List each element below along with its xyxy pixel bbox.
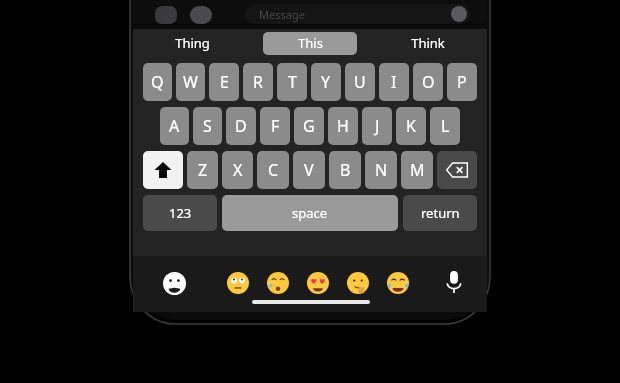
button[interactable]: Emoji	[265, 270, 291, 296]
staticText: X	[233, 159, 243, 181]
button[interactable]: Emoji keyboard	[161, 270, 187, 296]
staticText: Thing	[175, 34, 210, 52]
button[interactable]: Shift	[143, 151, 183, 189]
button[interactable]: Y	[311, 63, 341, 101]
staticText: L	[441, 115, 450, 137]
staticText: G	[303, 115, 315, 137]
staticText: C	[268, 159, 279, 181]
button[interactable]: Emoji	[305, 270, 331, 296]
staticText: Q	[151, 71, 164, 93]
button[interactable]: H	[328, 107, 358, 145]
staticText: K	[406, 115, 416, 137]
staticText: F	[271, 115, 280, 137]
button[interactable]: L	[430, 107, 460, 145]
button[interactable]: K	[396, 107, 426, 145]
button[interactable]: F	[260, 107, 290, 145]
button[interactable]: Z	[187, 151, 218, 189]
button[interactable]: Backspace	[437, 151, 477, 189]
button[interactable]: A	[160, 107, 189, 145]
staticText: return	[421, 204, 460, 222]
button[interactable]: space	[222, 195, 398, 231]
staticText: R	[253, 71, 263, 93]
staticText: V	[304, 159, 314, 181]
button[interactable]: V	[293, 151, 325, 189]
button[interactable]: R	[243, 63, 273, 101]
button[interactable]: This	[251, 29, 369, 57]
button[interactable]: G	[294, 107, 324, 145]
staticText: W	[183, 71, 198, 93]
button[interactable]: T	[277, 63, 307, 101]
staticText: U	[354, 71, 366, 93]
staticText: Message	[259, 7, 305, 22]
button[interactable]: N	[365, 151, 397, 189]
button[interactable]: C	[257, 151, 289, 189]
button[interactable]: Dictation	[441, 269, 467, 295]
button[interactable]: E	[209, 63, 239, 101]
staticText: D	[235, 115, 247, 137]
button[interactable]: Message	[245, 4, 471, 24]
staticText: H	[337, 115, 349, 137]
staticText: O	[422, 71, 435, 93]
staticText: space	[292, 204, 328, 222]
staticText: M	[410, 159, 425, 181]
staticText: S	[203, 115, 212, 137]
button[interactable]: S	[193, 107, 222, 145]
button[interactable]: I	[379, 63, 409, 101]
button[interactable]: Emoji	[225, 270, 251, 296]
button[interactable]: Emoji	[345, 270, 371, 296]
button[interactable]: B	[329, 151, 361, 189]
button[interactable]: U	[345, 63, 375, 101]
button[interactable]: 123	[143, 195, 217, 231]
staticText: B	[340, 159, 351, 181]
button[interactable]: O	[413, 63, 443, 101]
staticText: J	[375, 115, 380, 137]
button[interactable]: X	[222, 151, 253, 189]
button[interactable]: P	[447, 63, 477, 101]
button[interactable]: return	[403, 195, 477, 231]
staticText: N	[375, 159, 388, 181]
staticText: A	[169, 115, 180, 137]
button[interactable]: W	[176, 63, 205, 101]
button[interactable]: Camera	[155, 6, 177, 24]
button[interactable]: Apps	[190, 6, 212, 24]
staticText: 123	[169, 204, 192, 222]
button[interactable]: Thing	[133, 29, 251, 57]
button[interactable]: M	[401, 151, 433, 189]
staticText: E	[220, 71, 229, 93]
staticText: P	[457, 71, 467, 93]
button[interactable]: Think	[369, 29, 487, 57]
button[interactable]: Emoji	[385, 270, 411, 296]
staticText: T	[288, 71, 297, 93]
staticText: I	[391, 71, 397, 93]
staticText: This	[298, 34, 323, 52]
staticText: Z	[198, 159, 208, 181]
staticText: Think	[411, 34, 445, 52]
button[interactable]: D	[226, 107, 256, 145]
staticText: Y	[321, 71, 331, 93]
button[interactable]: J	[362, 107, 392, 145]
button[interactable]: Q	[143, 63, 172, 101]
